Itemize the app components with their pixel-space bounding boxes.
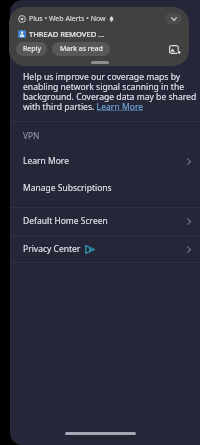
staticText: Manage Subscriptions: [23, 182, 112, 194]
staticText: VPN: [23, 130, 40, 141]
staticText: Privacy Center: [23, 243, 81, 255]
staticText: Default Home Screen: [23, 215, 108, 227]
button[interactable]: Mark as read: [52, 42, 110, 56]
staticText: Reply: [23, 44, 41, 54]
button[interactable]: Expand notification: [165, 13, 182, 24]
button[interactable]: Open picture: [167, 42, 183, 56]
staticText: Help us improve our coverage maps by ena…: [23, 71, 200, 112]
button[interactable]: Privacy Center: [10, 237, 200, 261]
button[interactable]: Learn More: [10, 149, 200, 173]
button[interactable]: Manage Subscriptions: [10, 176, 200, 200]
staticText: THREAD REMOVED ...: [29, 29, 105, 39]
button[interactable]: Default Home Screen: [10, 209, 200, 233]
staticText: Learn More: [23, 155, 69, 167]
button[interactable]: Reply: [16, 42, 47, 56]
staticText: Mark as read: [60, 44, 103, 54]
button[interactable]: Plus • Web Alerts • Now: [9, 7, 189, 66]
staticText: Plus • Web Alerts • Now: [29, 14, 106, 24]
